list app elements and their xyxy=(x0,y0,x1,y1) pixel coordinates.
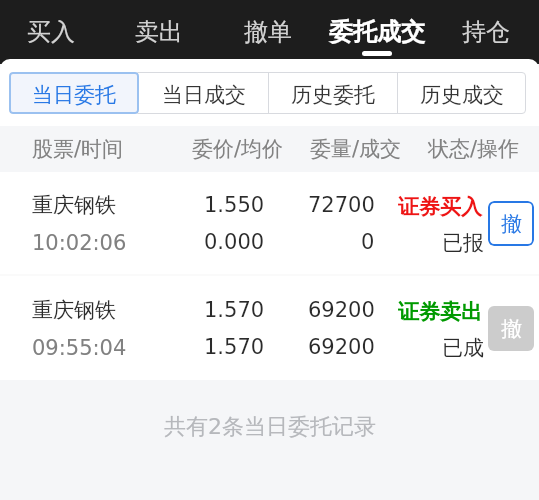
staticText: 证券买入 xyxy=(398,194,482,220)
staticText: 撤 xyxy=(501,211,522,237)
staticText: 历史成交 xyxy=(420,82,504,108)
staticText: 重庆钢铁 xyxy=(32,297,116,323)
staticText: 证券卖出 xyxy=(398,299,482,325)
staticText: 撤单 xyxy=(244,17,292,47)
staticText: 0 xyxy=(361,230,375,254)
staticText: 委托成交 xyxy=(329,17,425,47)
staticText: 09:55:04 xyxy=(32,336,127,360)
button[interactable]: 卖出 xyxy=(105,0,213,64)
button[interactable]: 买入 xyxy=(0,0,105,64)
staticText: 委价/均价 xyxy=(192,136,284,162)
button[interactable]: 撤单 xyxy=(488,201,534,246)
staticText: 1.550 xyxy=(204,193,265,217)
button[interactable]: 重庆钢铁 xyxy=(0,172,539,274)
button[interactable]: 撤单 不可用 xyxy=(488,306,534,351)
staticText: 买入 xyxy=(27,17,75,47)
button[interactable]: 撤单 xyxy=(213,0,322,64)
staticText: 已报 xyxy=(442,230,484,256)
staticText: 当日成交 xyxy=(162,82,246,108)
staticText: 10:02:06 xyxy=(32,231,127,255)
staticText: 重庆钢铁 xyxy=(32,192,116,218)
staticText: 1.570 xyxy=(204,298,265,322)
button[interactable]: 重庆钢铁 xyxy=(0,276,539,380)
button[interactable]: 委托成交 xyxy=(322,0,431,64)
staticText: 共有2条当日委托记录 xyxy=(164,413,376,441)
staticText: 69200 xyxy=(308,298,375,322)
staticText: 1.570 xyxy=(204,335,265,359)
staticText: 持仓 xyxy=(462,17,510,47)
button[interactable]: 历史委托 xyxy=(268,72,397,114)
staticText: 撤 xyxy=(501,316,522,342)
staticText: 已成 xyxy=(442,335,484,361)
staticText: 72700 xyxy=(308,193,375,217)
button[interactable]: 历史成交 xyxy=(397,72,526,114)
staticText: 当日委托 xyxy=(32,82,116,108)
staticText: 状态/操作 xyxy=(428,136,520,162)
staticText: 69200 xyxy=(308,335,375,359)
staticText: 0.000 xyxy=(204,230,265,254)
staticText: 卖出 xyxy=(135,17,183,47)
button[interactable]: 当日成交 xyxy=(139,72,268,114)
staticText: 委量/成交 xyxy=(310,136,402,162)
staticText: 股票/时间 xyxy=(32,136,124,162)
staticText: 历史委托 xyxy=(291,82,375,108)
button[interactable]: 持仓 xyxy=(431,0,539,64)
button[interactable]: 当日委托 xyxy=(9,72,139,114)
